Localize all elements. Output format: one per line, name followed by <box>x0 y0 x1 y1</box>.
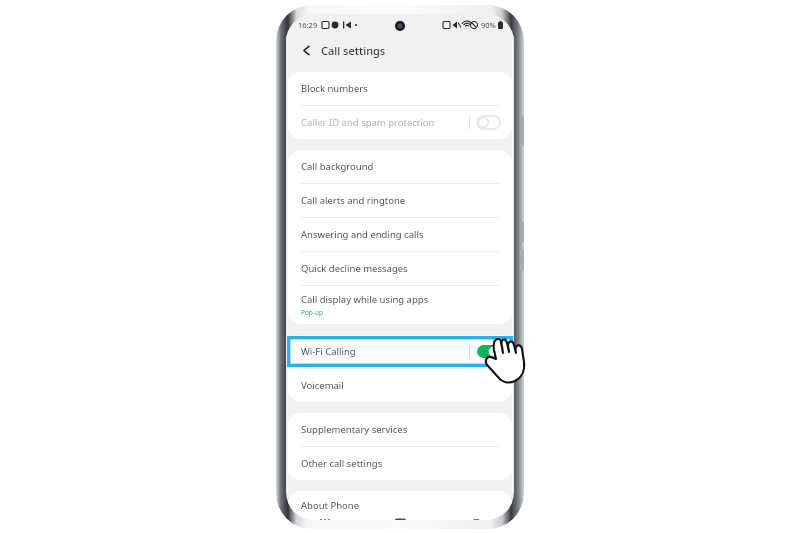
staticText: Call display while using apps <box>301 293 429 306</box>
button[interactable]: Back <box>297 41 315 59</box>
button[interactable]: Supplementary services <box>288 413 512 446</box>
staticText: Block numbers <box>301 82 368 95</box>
staticText: Quick decline messages <box>301 262 408 275</box>
staticText: 90% <box>481 20 496 30</box>
button[interactable]: Quick decline messages <box>288 252 512 285</box>
staticText: Call background <box>301 160 374 173</box>
button[interactable]: Caller ID and spam protection <box>288 106 512 139</box>
button[interactable]: Call display while using apps <box>288 286 512 324</box>
staticText: Voicemail <box>301 379 344 392</box>
staticText: 16:29 <box>298 20 318 30</box>
button[interactable]: Block numbers <box>288 72 512 105</box>
button[interactable]: Wi-Fi Calling <box>288 335 512 368</box>
staticText: About Phone <box>301 499 360 512</box>
button[interactable]: Toggle on <box>477 345 500 358</box>
button[interactable]: About Phone <box>288 491 512 520</box>
button[interactable]: Other call settings <box>288 447 512 480</box>
button[interactable]: Call background <box>288 150 512 183</box>
staticText: Pop-up <box>301 308 323 317</box>
staticText: Supplementary services <box>301 423 408 436</box>
staticText: Call alerts and ringtone <box>301 194 406 207</box>
button[interactable]: Toggle off <box>477 116 500 129</box>
button[interactable]: Voicemail <box>288 369 512 402</box>
staticText: Wi-Fi Calling <box>301 345 469 358</box>
staticText: Call settings <box>321 43 386 58</box>
staticText: Answering and ending calls <box>301 228 424 241</box>
button[interactable]: Call alerts and ringtone <box>288 184 512 217</box>
staticText: Other call settings <box>301 457 383 470</box>
button[interactable]: Answering and ending calls <box>288 218 512 251</box>
staticText: Caller ID and spam protection <box>301 116 469 129</box>
